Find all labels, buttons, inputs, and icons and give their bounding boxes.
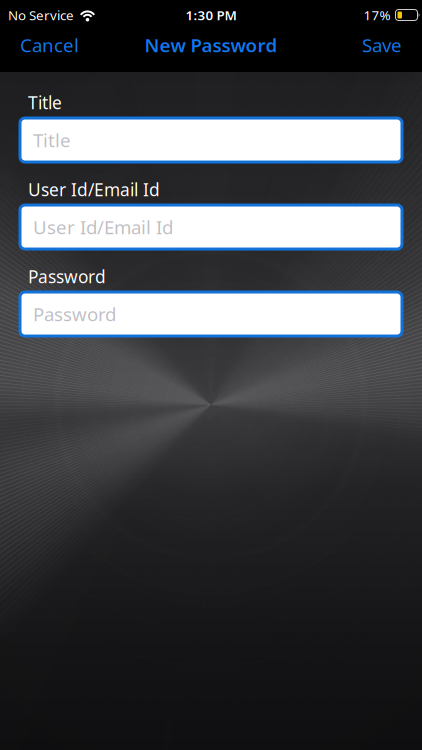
staticText: 1:30 PM (185, 6, 236, 24)
button[interactable]: Title (20, 118, 402, 162)
button[interactable]: Password (20, 292, 402, 336)
staticText: Password (28, 265, 106, 288)
staticText: No Service (8, 6, 74, 24)
staticText: Password (33, 302, 116, 326)
staticText: User Id/Email Id (28, 178, 160, 201)
button[interactable]: User Id/Email Id (20, 205, 402, 249)
button[interactable]: Cancel (20, 33, 79, 57)
staticText: User Id/Email Id (33, 215, 173, 239)
button[interactable]: Save (362, 33, 402, 57)
staticText: Save (362, 33, 402, 57)
staticText: Cancel (20, 33, 79, 57)
staticText: Title (28, 91, 62, 114)
staticText: Title (33, 128, 71, 152)
staticText: New Password (144, 33, 277, 57)
staticText: 17% (363, 6, 390, 24)
